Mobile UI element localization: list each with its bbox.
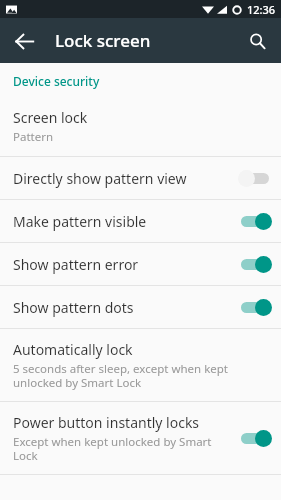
- staticText: Pattern: [13, 129, 54, 145]
- button[interactable]: Power button instantly locks: [0, 402, 281, 474]
- staticText: Make pattern visible: [13, 212, 147, 231]
- button[interactable]: Automatically lock: [0, 329, 281, 401]
- button[interactable]: Directly show pattern view: [0, 157, 281, 199]
- staticText: Show pattern error: [13, 255, 139, 274]
- button[interactable]: Show pattern error: [0, 243, 281, 285]
- button[interactable]: Make pattern visible: [0, 200, 281, 242]
- staticText: Except when kept unlocked by Smart Lock: [13, 434, 232, 463]
- staticText: 12:36: [247, 2, 276, 17]
- staticText: Automatically lock: [13, 340, 133, 359]
- button[interactable]: Screen lock: [0, 97, 281, 156]
- staticText: 5 seconds after sleep, except when kept …: [13, 361, 272, 390]
- button[interactable]: Search: [238, 22, 276, 60]
- button[interactable]: Show pattern dots: [0, 286, 281, 328]
- staticText: Directly show pattern view: [13, 169, 187, 188]
- staticText: Show pattern dots: [13, 298, 134, 317]
- staticText: Screen lock: [13, 108, 88, 127]
- staticText: Lock screen: [55, 29, 151, 52]
- staticText: Device security: [13, 73, 100, 89]
- staticText: Power button instantly locks: [13, 413, 200, 432]
- button[interactable]: Back: [5, 22, 43, 60]
